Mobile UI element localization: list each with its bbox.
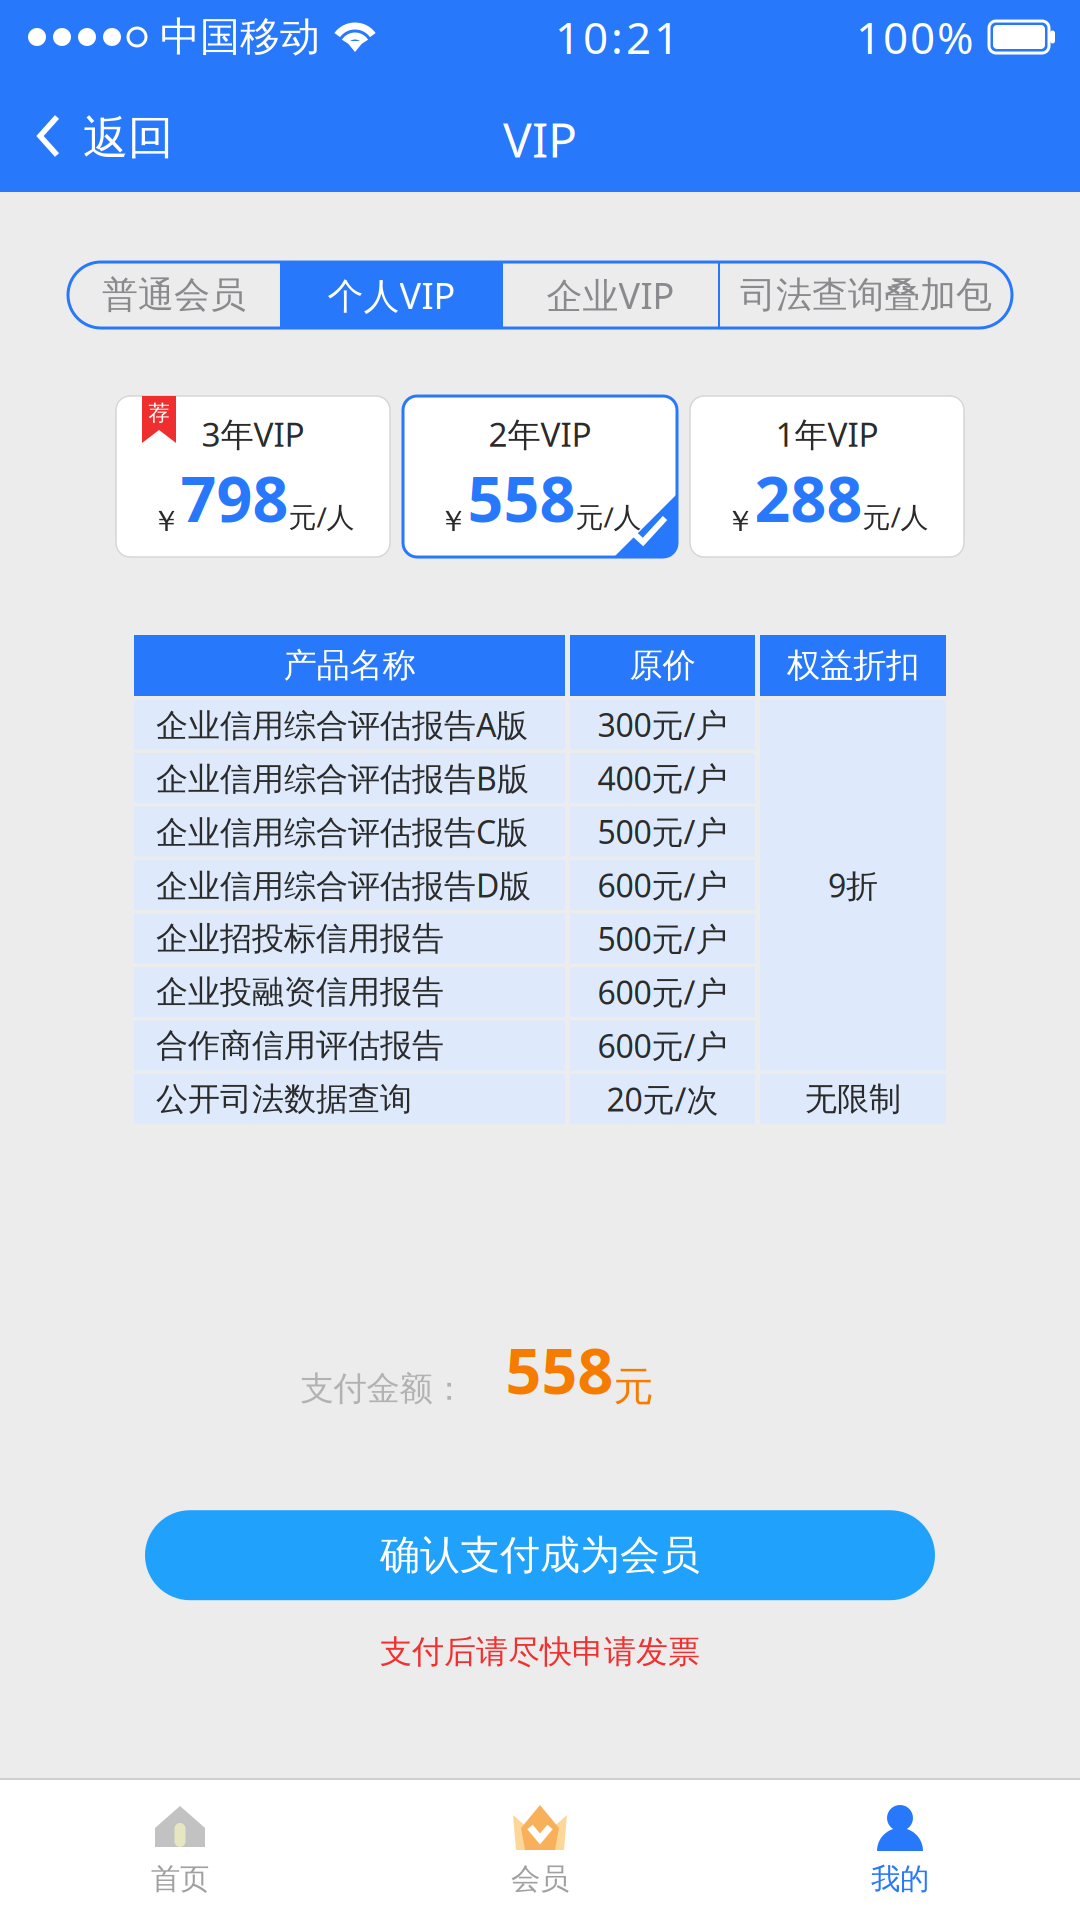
button[interactable]: 首页 — [0, 1780, 360, 1920]
button[interactable]: 企业VIP — [503, 262, 718, 328]
staticText: 288 — [754, 456, 862, 539]
staticText: 合作商信用评估报告 — [156, 1026, 444, 1065]
button[interactable]: 普通会员 — [68, 262, 280, 328]
staticText: 9折 — [828, 864, 878, 906]
staticText: 400元/户 — [597, 757, 727, 799]
staticText: 企业信用综合评估报告B版 — [156, 757, 529, 799]
staticText: 10:21 — [555, 8, 679, 66]
staticText: 3年VIP — [201, 412, 304, 456]
button[interactable]: 3年VIP — [116, 396, 390, 557]
staticText: 个人VIP — [327, 271, 455, 319]
staticText: 企业投融资信用报告 — [156, 972, 444, 1012]
staticText: 2年VIP — [488, 412, 591, 456]
staticText: 600元/户 — [597, 971, 727, 1013]
staticText: 600元/户 — [597, 864, 727, 906]
staticText: 元/人 — [862, 498, 928, 535]
button[interactable]: 个人VIP — [282, 262, 501, 328]
staticText: 荐 — [148, 400, 169, 426]
staticText: 支付金额： — [300, 1368, 465, 1409]
staticText: 600元/户 — [597, 1024, 727, 1067]
staticText: ￥ — [151, 503, 180, 539]
staticText: 普通会员 — [102, 273, 246, 317]
staticText: 企业VIP — [546, 271, 674, 319]
staticText: ￥ — [725, 503, 754, 539]
staticText: 司法查询叠加包 — [740, 273, 992, 317]
staticText: 会员 — [511, 1861, 569, 1897]
staticText: 确认支付成为会员 — [380, 1531, 700, 1580]
staticText: 企业信用综合评估报告C版 — [156, 810, 528, 853]
staticText: 权益折扣 — [787, 645, 919, 686]
staticText: 首页 — [151, 1861, 209, 1897]
staticText: ￥ — [438, 503, 467, 539]
staticText: 中国移动 — [160, 12, 320, 61]
staticText: 无限制 — [805, 1079, 901, 1119]
staticText: 产品名称 — [283, 645, 415, 686]
staticText: 500元/户 — [597, 810, 727, 853]
staticText: 558 — [505, 1328, 613, 1411]
button[interactable]: 会员 — [360, 1780, 720, 1920]
button[interactable]: 1年VIP — [690, 396, 964, 557]
staticText: 原价 — [629, 645, 695, 686]
button[interactable]: 我的 — [720, 1780, 1080, 1920]
button[interactable]: 确认支付成为会员 — [145, 1510, 935, 1600]
staticText: VIP — [503, 107, 577, 171]
staticText: 300元/户 — [597, 703, 727, 746]
button[interactable]: 2年VIP — [403, 396, 677, 557]
staticText: 1年VIP — [775, 412, 878, 456]
staticText: 企业信用综合评估报告D版 — [156, 864, 531, 906]
staticText: 500元/户 — [597, 917, 727, 960]
staticText: 企业招投标信用报告 — [156, 919, 444, 958]
staticText: 元/人 — [575, 498, 641, 535]
staticText: 元/人 — [288, 498, 354, 535]
staticText: 我的 — [871, 1861, 929, 1897]
staticText: 100% — [856, 8, 974, 66]
staticText: 返回 — [83, 110, 173, 166]
staticText: 20元/次 — [606, 1078, 718, 1120]
staticText: 公开司法数据查询 — [156, 1079, 412, 1119]
staticText: 元 — [613, 1362, 653, 1411]
staticText: 558 — [467, 456, 575, 539]
staticText: 支付后请尽快申请发票 — [380, 1632, 700, 1671]
staticText: 798 — [180, 456, 288, 539]
button[interactable]: 司法查询叠加包 — [720, 262, 1012, 328]
staticText: 企业信用综合评估报告A版 — [156, 703, 528, 746]
button[interactable]: 返回 — [0, 74, 199, 192]
